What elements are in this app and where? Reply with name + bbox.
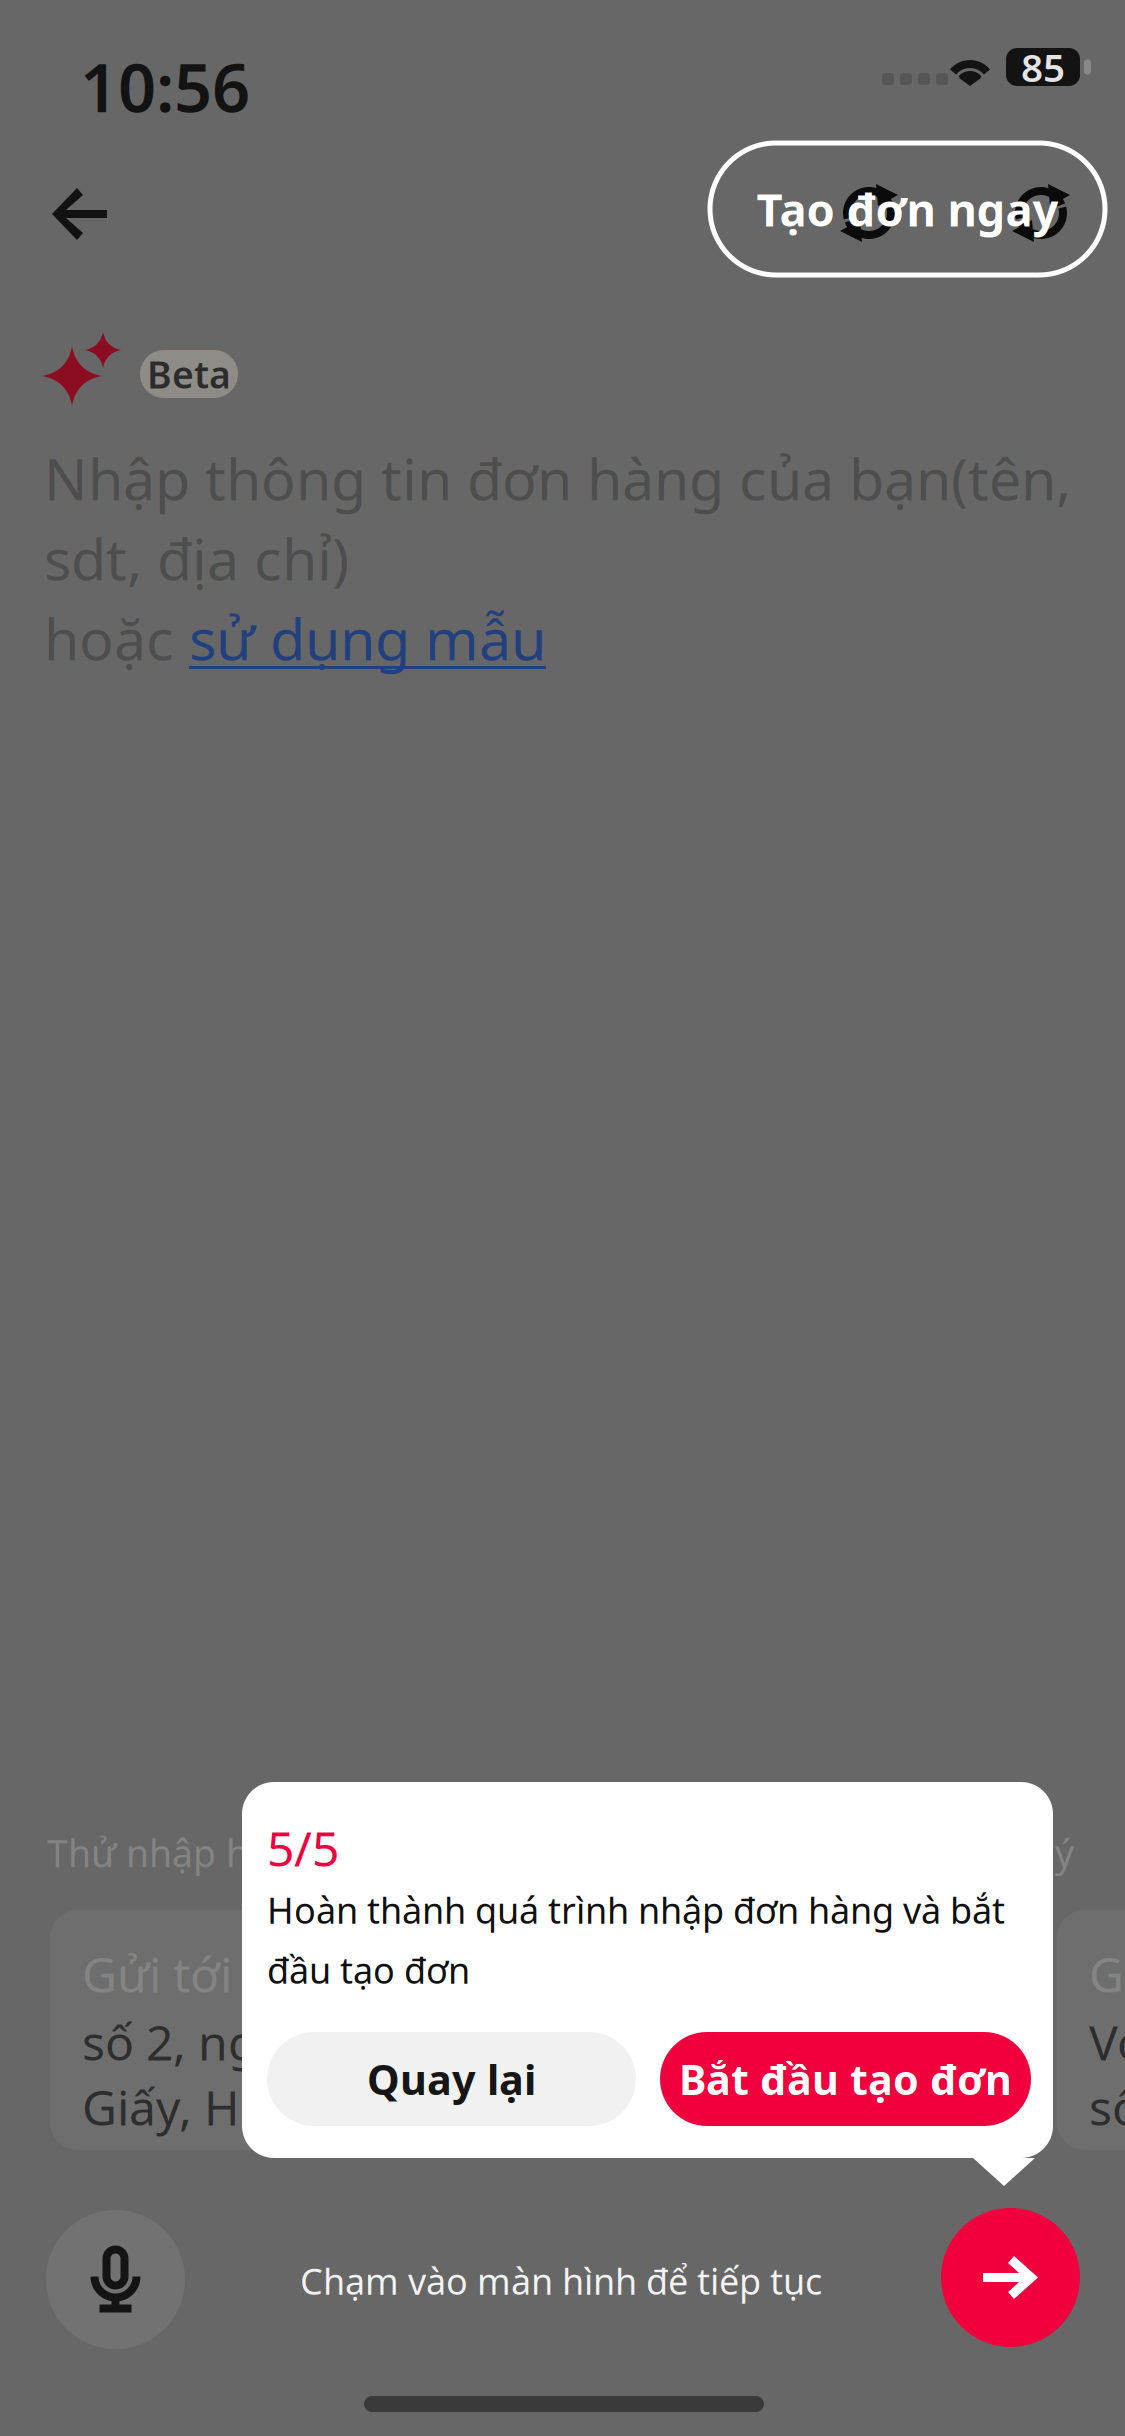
staticText: Vọng Hà, quận Hai — [1089, 2010, 1125, 2074]
staticText: 5/5 — [267, 1816, 339, 1880]
staticText: Tạo đơn ngay — [756, 179, 1058, 239]
button[interactable]: Gửi tới — [1057, 1910, 1125, 2150]
button[interactable]: Gửi tới — [50, 1910, 1035, 2150]
staticText: Quay lại — [367, 2052, 536, 2106]
staticText: sdt, địa chỉ) — [44, 520, 349, 596]
button[interactable]: Voice input — [46, 2210, 185, 2349]
button[interactable]: Quay lại — [267, 2032, 636, 2126]
button[interactable]: Back — [50, 184, 110, 244]
staticText: hoặc — [44, 600, 189, 676]
staticText: Beta — [147, 349, 231, 399]
staticText: Nhập thông tin đơn hàng của bạn(tên, — [44, 440, 1071, 516]
staticText: Nguyễn Văn A — [244, 1942, 572, 2006]
button[interactable]: Tạo đơn ngay — [710, 143, 1105, 275]
staticText: Hoàn thành quá trình nhập đơn hàng và bắ… — [267, 1886, 1005, 1934]
staticText: 10:56 — [80, 42, 250, 130]
button[interactable]: sử dụng mẫu — [189, 600, 546, 676]
button[interactable]: Continue — [941, 2208, 1080, 2347]
staticText: Gửi tới — [1089, 1942, 1125, 2006]
staticText: Giấy, Hà Nội — [82, 2075, 356, 2139]
staticText: Thử nhập hoặc chọn nhanh một trong các g… — [47, 1828, 1074, 1878]
staticText: Chạm vào màn hình để tiếp tục — [300, 2257, 822, 2305]
staticText: số 6, Hà Nội — [1089, 2075, 1125, 2139]
button[interactable]: Bắt đầu tạo đơn — [660, 2032, 1031, 2126]
button[interactable]: Redo — [1012, 184, 1070, 242]
staticText: Bắt đầu tạo đơn — [679, 2052, 1012, 2106]
staticText: 85 — [1021, 41, 1065, 93]
button[interactable]: Undo — [840, 184, 898, 242]
staticText: số 2, ngõ 15 Cầu — [82, 2010, 452, 2074]
staticText: đầu tạo đơn — [267, 1946, 470, 1994]
staticText: sử dụng mẫu — [189, 600, 546, 676]
staticText: Gửi tới — [82, 1942, 244, 2006]
